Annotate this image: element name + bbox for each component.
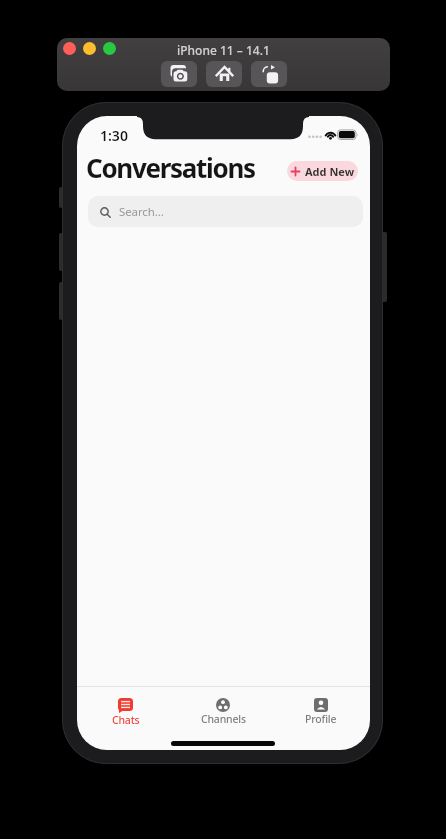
button[interactable]: Profile bbox=[272, 687, 370, 726]
staticText: Add New bbox=[305, 164, 355, 179]
button[interactable]: Add New bbox=[287, 161, 358, 181]
button[interactable]: Chats bbox=[77, 687, 174, 727]
staticText: Chats bbox=[112, 713, 140, 727]
staticText: iPhone 11 – 14.1 bbox=[177, 42, 270, 58]
staticText: Conversations bbox=[86, 150, 255, 185]
staticText: Channels bbox=[201, 712, 246, 726]
button[interactable]: Channels bbox=[174, 687, 272, 726]
button[interactable] bbox=[161, 61, 197, 87]
button[interactable] bbox=[206, 61, 242, 87]
staticText: Search... bbox=[119, 204, 164, 220]
button[interactable]: Search... bbox=[88, 196, 363, 227]
button[interactable] bbox=[83, 42, 96, 55]
staticText: Profile bbox=[305, 712, 337, 726]
button[interactable] bbox=[63, 42, 76, 55]
button[interactable] bbox=[103, 42, 116, 55]
button[interactable] bbox=[251, 61, 287, 87]
staticText: 1:30 bbox=[100, 126, 128, 145]
